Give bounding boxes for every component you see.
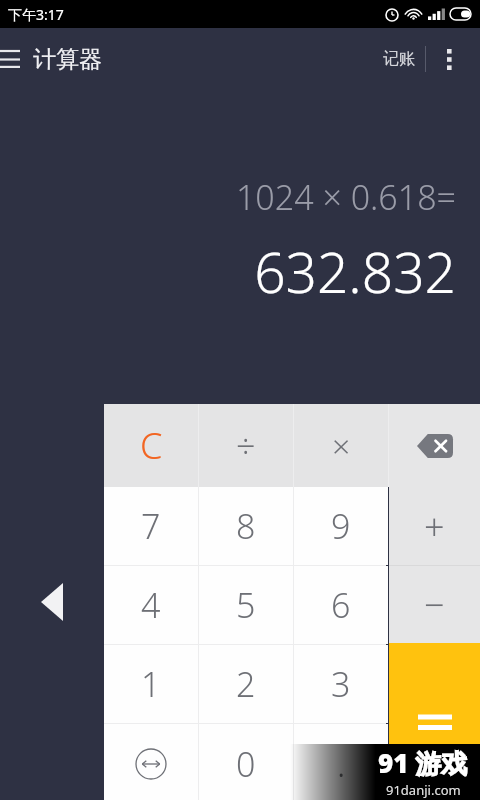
button[interactable]: 3 [294,645,388,723]
button[interactable]: C [104,404,198,487]
staticText: ÷ [236,423,256,469]
staticText: 1024 × 0.618= [235,174,456,220]
staticText: + [424,502,445,551]
button[interactable]: 7 [104,487,198,565]
staticText: 2 [236,661,256,707]
button[interactable]: . [294,724,388,800]
staticText: 9 [331,503,351,549]
staticText: C [140,421,163,470]
staticText: 8 [236,503,256,549]
button[interactable]: ÷ [199,404,293,487]
button[interactable]: Backspace [389,404,480,487]
button[interactable]: − [389,566,480,643]
button[interactable]: 2 [199,645,293,723]
button[interactable]: 0 [199,724,293,800]
button[interactable]: Menu [0,36,32,82]
staticText: . [337,741,346,787]
button[interactable]: 1 [104,645,198,723]
staticText: 0 [236,741,256,787]
staticText: 6 [331,582,351,628]
staticText: 记账 [383,49,415,69]
button[interactable]: + [389,487,480,565]
button[interactable]: Equals [389,643,480,800]
staticText: 计算器 [33,45,102,74]
staticText: 632.832 [254,234,456,309]
button[interactable]: 记账 [373,37,425,81]
staticText: 91 游戏 [378,745,468,781]
staticText: 91danji.com [386,781,461,799]
staticText: − [424,580,445,629]
button[interactable]: 6 [294,566,388,644]
button[interactable]: 4 [104,566,198,644]
button[interactable]: More options [426,36,472,82]
staticText: 1 [141,661,161,707]
staticText: 下午3:17 [8,5,64,24]
button[interactable]: Toggle [104,724,198,800]
staticText: 5 [236,582,256,628]
button[interactable]: 8 [199,487,293,565]
button[interactable]: Collapse keypad [28,578,76,626]
button[interactable]: 5 [199,566,293,644]
staticText: 3 [331,661,351,707]
staticText: × [332,424,351,468]
button[interactable]: × [294,404,388,487]
staticText: 7 [141,503,161,549]
button[interactable]: 9 [294,487,388,565]
staticText: 4 [141,582,161,628]
